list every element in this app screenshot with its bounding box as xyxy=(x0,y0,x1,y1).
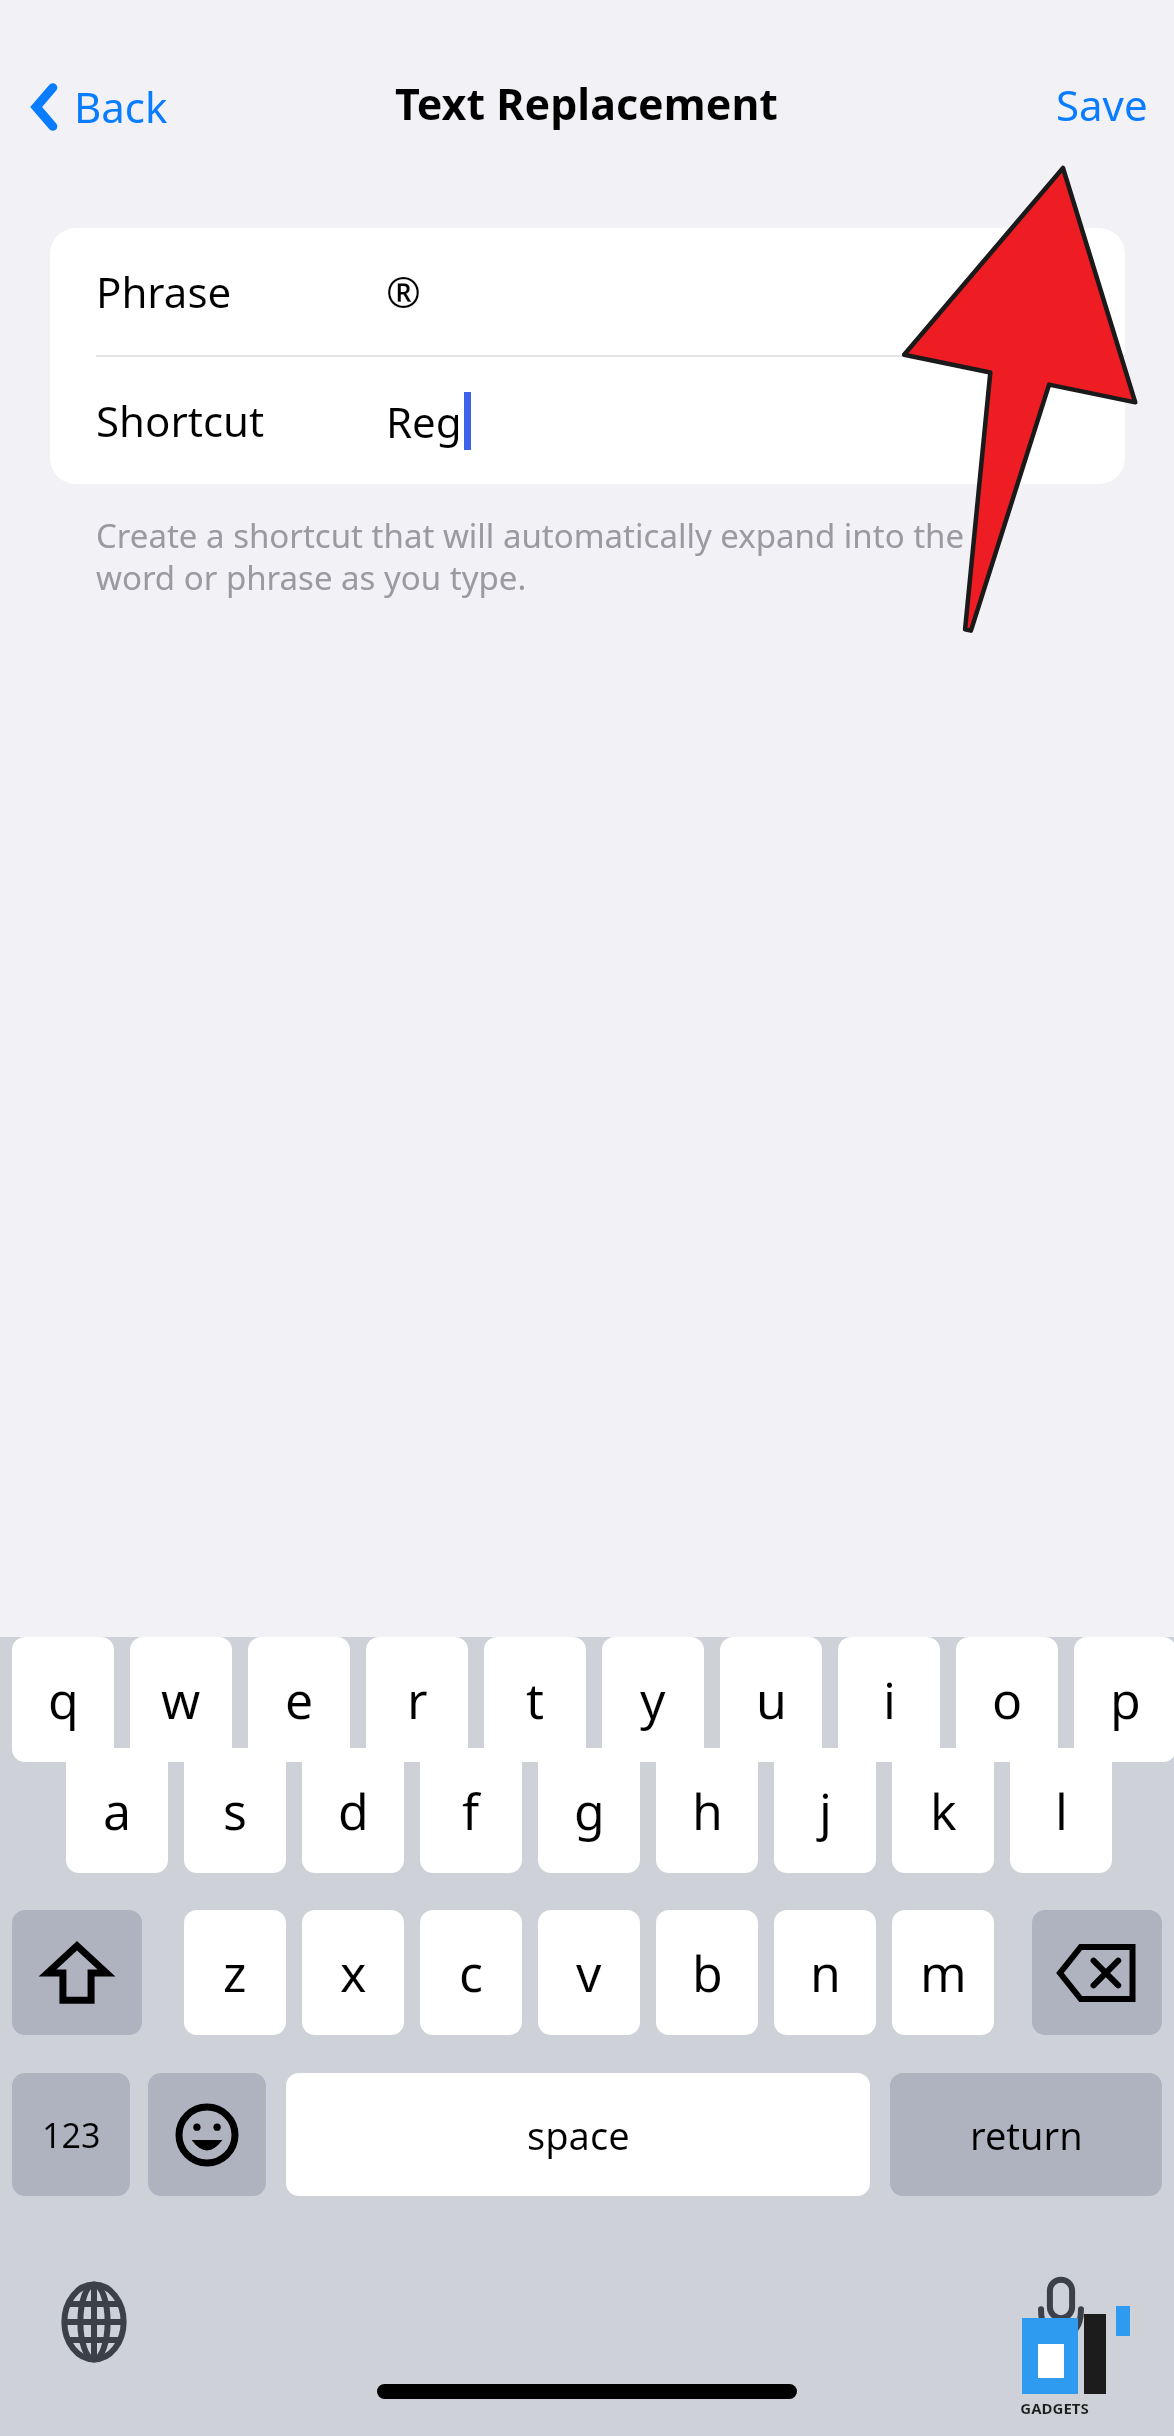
button[interactable]: u xyxy=(720,1637,822,1762)
button[interactable]: t xyxy=(484,1637,586,1762)
button[interactable]: i xyxy=(838,1637,940,1762)
staticText: r xyxy=(407,1666,428,1734)
button[interactable]: Phrase xyxy=(50,228,1125,355)
staticText: Back xyxy=(74,78,168,135)
staticText: w xyxy=(161,1666,201,1734)
staticText: v xyxy=(576,1939,602,2007)
button[interactable]: j xyxy=(774,1748,876,1873)
staticText: f xyxy=(462,1777,480,1845)
staticText: k xyxy=(930,1777,957,1845)
staticText: Shortcut xyxy=(96,392,336,449)
staticText: Phrase xyxy=(96,263,336,320)
button[interactable]: Save xyxy=(1038,68,1166,141)
button[interactable]: v xyxy=(538,1910,640,2035)
staticText: Reg xyxy=(386,393,462,450)
staticText: e xyxy=(285,1666,314,1734)
staticText: p xyxy=(1110,1666,1141,1734)
staticText: i xyxy=(883,1666,896,1734)
staticText: b xyxy=(692,1939,723,2007)
staticText: j xyxy=(819,1777,832,1845)
staticText: n xyxy=(810,1939,841,2007)
button[interactable]: c xyxy=(420,1910,522,2035)
button[interactable]: Numbers xyxy=(12,2073,130,2196)
staticText: space xyxy=(527,2109,630,2161)
button[interactable]: x xyxy=(302,1910,404,2035)
staticText: return xyxy=(970,2109,1083,2161)
staticText: ® xyxy=(386,263,421,320)
button[interactable]: k xyxy=(892,1748,994,1873)
staticText: s xyxy=(223,1777,247,1845)
staticText: 123 xyxy=(42,2112,101,2158)
staticText: q xyxy=(48,1666,79,1734)
button[interactable]: p xyxy=(1074,1637,1174,1762)
staticText: l xyxy=(1055,1777,1068,1845)
button[interactable]: s xyxy=(184,1748,286,1873)
button[interactable]: a xyxy=(66,1748,168,1873)
button[interactable]: r xyxy=(366,1637,468,1762)
button[interactable]: w xyxy=(130,1637,232,1762)
staticText: GADGETS xyxy=(1020,2398,1089,2418)
button[interactable]: Back xyxy=(22,72,178,141)
button[interactable]: e xyxy=(248,1637,350,1762)
button[interactable]: Change keyboard language xyxy=(52,2280,136,2364)
button[interactable]: space xyxy=(286,2073,870,2196)
button[interactable]: n xyxy=(774,1910,876,2035)
button[interactable]: Dictation xyxy=(1018,2270,1104,2356)
button[interactable]: Emoji xyxy=(148,2073,266,2196)
staticText: Create a shortcut that will automaticall… xyxy=(96,513,1076,600)
staticText: h xyxy=(692,1777,723,1845)
staticText: y xyxy=(640,1666,666,1734)
button[interactable]: b xyxy=(656,1910,758,2035)
staticText: u xyxy=(756,1666,787,1734)
button[interactable]: f xyxy=(420,1748,522,1873)
staticText: o xyxy=(992,1666,1023,1734)
staticText: m xyxy=(920,1939,967,2007)
button[interactable]: y xyxy=(602,1637,704,1762)
staticText: x xyxy=(340,1939,367,2007)
button[interactable]: z xyxy=(184,1910,286,2035)
button[interactable]: d xyxy=(302,1748,404,1873)
button[interactable]: Shift xyxy=(12,1910,142,2035)
staticText: g xyxy=(574,1777,605,1845)
button[interactable]: m xyxy=(892,1910,994,2035)
button[interactable]: h xyxy=(656,1748,758,1873)
button[interactable]: g xyxy=(538,1748,640,1873)
staticText: c xyxy=(459,1939,483,2007)
button[interactable]: return xyxy=(890,2073,1162,2196)
staticText: Text Replacement xyxy=(395,74,779,133)
button[interactable]: q xyxy=(12,1637,114,1762)
button[interactable]: Delete xyxy=(1032,1910,1162,2035)
staticText: z xyxy=(223,1939,247,2007)
button[interactable]: l xyxy=(1010,1748,1112,1873)
staticText: t xyxy=(526,1666,545,1734)
staticText: d xyxy=(338,1777,369,1845)
button[interactable]: Shortcut xyxy=(50,357,1125,484)
button[interactable]: o xyxy=(956,1637,1058,1762)
staticText: a xyxy=(103,1777,132,1845)
staticText: Save xyxy=(1056,76,1148,133)
